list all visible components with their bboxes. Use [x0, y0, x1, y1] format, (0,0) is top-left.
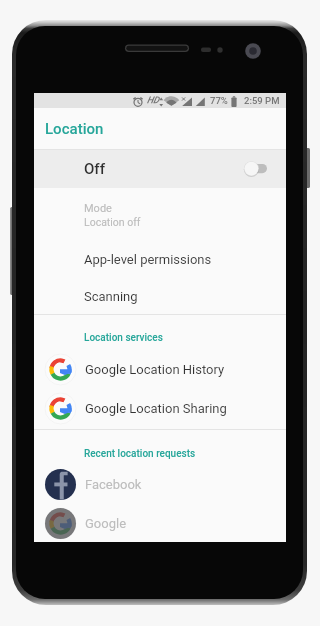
button[interactable]: Google — [34, 504, 286, 542]
button[interactable]: Scanning — [34, 277, 286, 315]
staticText: Location services — [84, 332, 163, 344]
staticText: Off — [84, 160, 105, 178]
staticText: 2:59 PM — [244, 95, 280, 106]
staticText: Recent location requests — [84, 448, 196, 460]
staticText: 77% — [210, 95, 228, 106]
button[interactable]: Off — [34, 150, 286, 188]
staticText: Scanning — [84, 289, 138, 304]
staticText: Location off — [84, 216, 141, 228]
staticText: Mode — [84, 202, 112, 215]
button[interactable]: Toggle location — [244, 150, 286, 188]
button[interactable]: Mode — [34, 188, 286, 240]
staticText: App-level permissions — [84, 252, 212, 267]
staticText: Google Location Sharing — [85, 401, 227, 416]
button[interactable]: App-level permissions — [34, 240, 286, 278]
staticText: Location — [45, 120, 104, 138]
staticText: Google — [85, 516, 127, 531]
staticText: HD — [147, 95, 159, 106]
button[interactable]: Google Location Sharing — [34, 389, 286, 427]
button[interactable]: Google Location History — [34, 350, 286, 388]
staticText: Facebook — [85, 477, 142, 492]
button[interactable]: Facebook — [34, 465, 286, 503]
staticText: Google Location History — [85, 362, 225, 377]
